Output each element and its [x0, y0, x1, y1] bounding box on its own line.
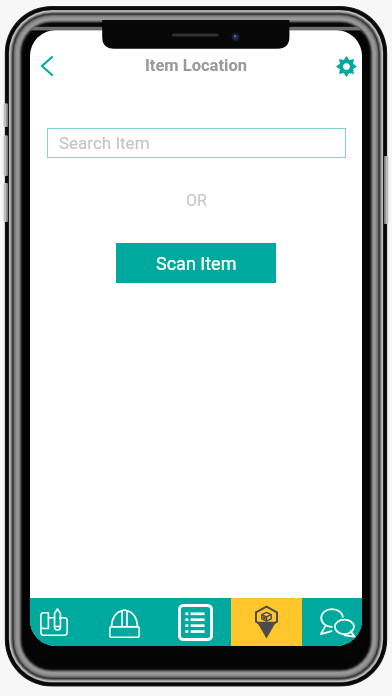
staticText: Search Item [59, 133, 150, 153]
button[interactable]: Item Location [231, 598, 302, 646]
staticText: Scan Item [156, 253, 237, 274]
button[interactable]: Chat [302, 598, 362, 646]
staticText: OR [186, 191, 207, 210]
button[interactable]: Back [30, 46, 63, 86]
button[interactable]: Workers [89, 598, 160, 646]
button[interactable]: Plans [30, 598, 89, 646]
button[interactable]: Scan Item [116, 243, 276, 283]
button[interactable]: Search Item [47, 128, 346, 158]
staticText: Item Location [145, 56, 247, 75]
button[interactable]: Tasks [160, 598, 231, 646]
button[interactable]: Settings [326, 46, 362, 86]
